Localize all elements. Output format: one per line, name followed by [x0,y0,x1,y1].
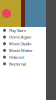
staticText: Movie Maker [9,48,33,53]
staticText: Nocturnal [9,61,26,66]
staticText: Pinterest [9,54,24,60]
button[interactable]: Home Again [0,34,46,40]
button[interactable]: Movie Maker [0,47,46,54]
button[interactable]: Nocturnal [0,60,46,67]
button[interactable]: Pinterest [0,54,46,60]
staticText: Home Again [9,34,31,40]
button[interactable]: Play Store [0,27,46,34]
button[interactable]: Movie Studio [0,40,46,47]
staticText: Play Store [9,28,26,33]
staticText: Movie Studio [9,41,31,46]
